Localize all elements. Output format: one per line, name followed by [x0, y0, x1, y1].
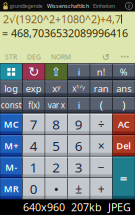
staticText: Wissenschaftlich	[47, 2, 89, 10]
button[interactable]: x¹ᐟʸ	[67, 80, 90, 97]
staticText: −	[98, 159, 105, 175]
staticText: log	[4, 82, 18, 95]
staticText: M+	[4, 139, 18, 152]
button[interactable]: Del	[112, 135, 135, 156]
staticText: •	[54, 180, 59, 198]
button[interactable]: i	[67, 97, 90, 113]
staticText: 1	[30, 158, 38, 176]
staticText: (	[100, 98, 103, 112]
staticText: AC	[118, 118, 130, 130]
button[interactable]: Wissenschaftlich	[47, 0, 93, 11]
button[interactable]: n!	[90, 63, 112, 80]
staticText: Einheiten	[93, 2, 115, 10]
staticText: grundlegende	[10, 2, 43, 10]
button[interactable]: 2	[45, 156, 67, 178]
button[interactable]: =	[112, 156, 135, 199]
staticText: 2√(1920^2+1080^2)+4,7	[3, 12, 121, 26]
button[interactable]: MR	[0, 178, 22, 199]
button[interactable]: History	[101, 52, 111, 61]
staticText: 4	[30, 137, 38, 155]
staticText: DEG	[27, 53, 41, 61]
button[interactable]: 1	[22, 156, 45, 178]
staticText: =	[120, 169, 128, 187]
button[interactable]: 3	[67, 156, 90, 178]
button[interactable]: f(x)	[22, 97, 45, 113]
staticText: f(x)	[28, 100, 39, 110]
staticText: ⇧	[51, 65, 61, 79]
staticText: n!	[97, 66, 106, 78]
staticText: NORM	[51, 53, 71, 61]
staticText: 5	[52, 137, 60, 155]
staticText: var x	[48, 100, 65, 110]
staticText: ×	[98, 138, 105, 154]
staticText: ans	[116, 82, 131, 95]
button[interactable]: ans	[112, 80, 135, 97]
staticText: ↻	[28, 64, 39, 79]
button[interactable]: ÷	[90, 113, 112, 135]
staticText: ran	[94, 82, 109, 95]
button[interactable]: Info	[123, 0, 135, 11]
button[interactable]: i	[67, 63, 90, 80]
button[interactable]: log	[0, 80, 22, 97]
button[interactable]: •	[45, 178, 67, 199]
button[interactable]: 0	[22, 178, 45, 199]
staticText: Del	[116, 139, 131, 152]
staticText: ↺	[102, 52, 110, 62]
button[interactable]: ±	[67, 178, 90, 199]
button[interactable]: 9	[67, 113, 90, 135]
button[interactable]: −	[90, 156, 112, 178]
staticText: M-	[5, 161, 17, 173]
staticText: i	[78, 99, 80, 111]
button[interactable]: var x	[45, 97, 67, 113]
button[interactable]: 6	[67, 135, 90, 156]
button[interactable]: %	[112, 63, 135, 80]
staticText: exp	[26, 82, 42, 95]
button[interactable]: Share	[45, 63, 67, 80]
staticText: 0	[30, 180, 38, 198]
staticText: 7	[30, 115, 38, 133]
staticText: 3	[75, 158, 83, 176]
staticText: +	[98, 181, 105, 197]
staticText: 6	[75, 137, 83, 155]
button[interactable]: Einheiten	[93, 0, 119, 11]
staticText: MR	[4, 182, 19, 195]
staticText: %	[120, 66, 128, 78]
staticText: )	[122, 98, 125, 112]
staticText: ±	[75, 181, 82, 197]
button[interactable]: exp	[22, 80, 45, 97]
staticText: xʸ	[52, 82, 60, 95]
button[interactable]: (	[90, 97, 112, 113]
button[interactable]: xʸ	[45, 80, 67, 97]
button[interactable]: M+	[0, 135, 22, 156]
staticText: 2	[52, 158, 60, 176]
button[interactable]: Keypad layout	[0, 63, 22, 80]
staticText: MC	[4, 118, 19, 130]
button[interactable]: ×	[90, 135, 112, 156]
staticText: STR	[5, 53, 17, 61]
button[interactable]: )	[112, 97, 135, 113]
button[interactable]: 7	[22, 113, 45, 135]
button[interactable]: Reset	[22, 63, 45, 80]
staticText: = 468,7036532089996416	[2, 26, 128, 40]
staticText: ÷	[98, 116, 105, 132]
staticText: •••	[120, 53, 129, 61]
button[interactable]: AC	[112, 113, 135, 135]
staticText: x¹ᐟʸ	[72, 83, 85, 94]
button[interactable]: More	[119, 52, 131, 61]
button[interactable]: 8	[45, 113, 67, 135]
button[interactable]: const	[0, 97, 22, 113]
button[interactable]: 4	[22, 135, 45, 156]
button[interactable]: grundlegende	[0, 0, 47, 11]
staticText: 640x960 207kb JPEG	[23, 200, 131, 214]
button[interactable]: ran	[90, 80, 112, 97]
staticText: i	[78, 66, 80, 78]
staticText: 8	[52, 115, 60, 133]
button[interactable]: 5	[45, 135, 67, 156]
staticText: ⓘ	[125, 1, 133, 11]
button[interactable]: +	[90, 178, 112, 199]
button[interactable]: M-	[0, 156, 22, 178]
staticText: 9	[75, 115, 83, 133]
button[interactable]: MC	[0, 113, 22, 135]
staticText: const	[1, 100, 22, 110]
